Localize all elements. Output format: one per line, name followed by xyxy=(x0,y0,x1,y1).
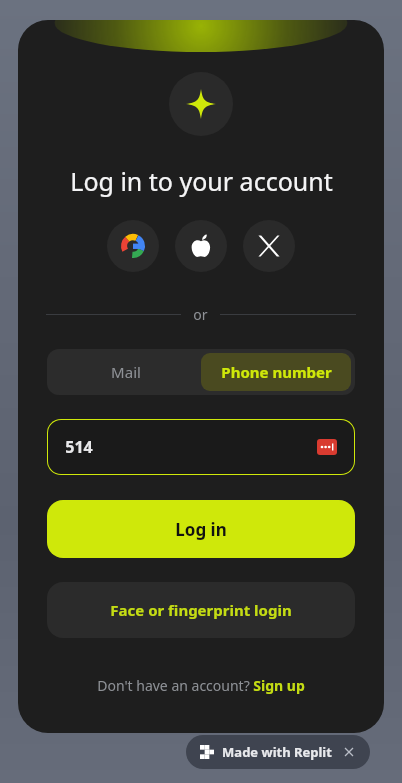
staticText: Phone number xyxy=(221,362,332,382)
button[interactable]: Face or fingerprint login xyxy=(47,582,355,638)
button[interactable]: Sign in with Apple xyxy=(175,220,227,272)
staticText: Face or fingerprint login xyxy=(110,600,292,620)
button[interactable]: Sign in with X xyxy=(243,220,295,272)
staticText: Mail xyxy=(111,362,141,382)
button[interactable]: Log in xyxy=(47,500,355,558)
button[interactable]: Made with Replit xyxy=(186,735,370,769)
staticText: Made with Replit xyxy=(222,743,332,761)
other: Country flag xyxy=(317,439,337,455)
button[interactable]: Mail xyxy=(51,353,201,391)
staticText: Log in to your account xyxy=(70,164,333,198)
button[interactable]: Sign in with Google xyxy=(107,220,159,272)
button[interactable]: Don't have an account? Sign up xyxy=(91,672,311,699)
button[interactable]: Phone number xyxy=(201,353,351,391)
staticText: 514 xyxy=(65,436,93,458)
button[interactable]: 514 xyxy=(47,419,355,475)
staticText: Log in xyxy=(175,518,227,541)
staticText: or xyxy=(193,305,208,324)
other: App logo xyxy=(169,72,233,136)
staticText: Don't have an account? Sign up xyxy=(97,676,305,695)
button[interactable]: Close badge xyxy=(342,745,356,759)
